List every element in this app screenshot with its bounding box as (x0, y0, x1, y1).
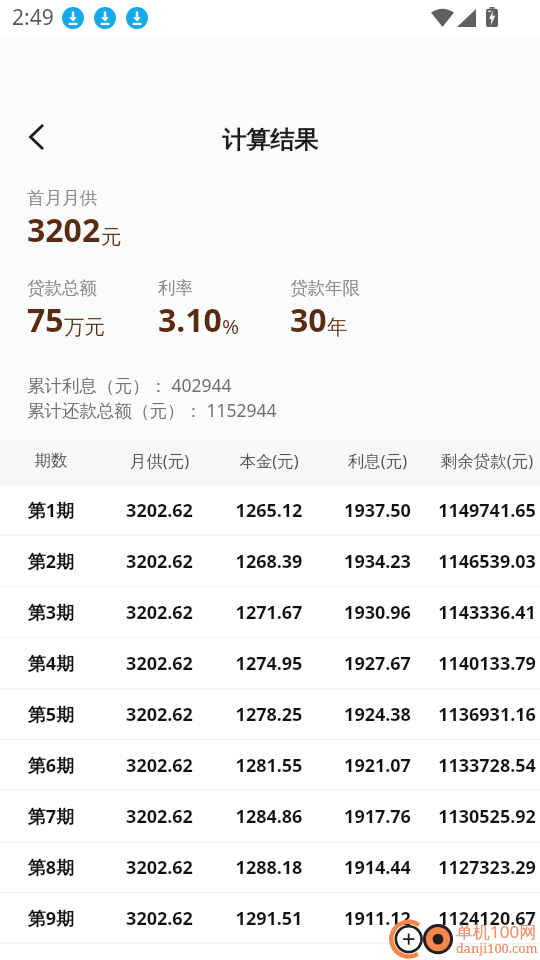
staticText: 第6期 (0, 753, 102, 778)
staticText: 1265.12 (217, 498, 321, 523)
staticText: danji100.com (456, 939, 538, 956)
staticText: % (222, 312, 240, 340)
staticText: 1130525.92 (434, 804, 540, 829)
staticText: 计算结果 (222, 125, 318, 155)
staticText: 1136931.16 (434, 702, 540, 727)
staticText: 3202.62 (102, 855, 217, 880)
staticText: 1917.76 (321, 804, 434, 829)
staticText: 1291.51 (217, 906, 321, 931)
staticText: 75 (27, 298, 64, 342)
staticText: 3202.62 (102, 498, 217, 523)
staticText: 1937.50 (321, 498, 434, 523)
staticText: 剩余贷款(元) (434, 449, 540, 472)
staticText: 期数 (0, 450, 102, 471)
staticText: 1284.86 (217, 804, 321, 829)
staticText: 3202.62 (102, 906, 217, 931)
staticText: 单机100网 (456, 920, 537, 943)
staticText: 1127323.29 (434, 855, 540, 880)
staticText: 3202.62 (102, 600, 217, 625)
staticText: 3202.62 (102, 549, 217, 574)
staticText: 第3期 (0, 600, 102, 625)
staticText: 30 (290, 298, 327, 342)
staticText: 3202.62 (102, 702, 217, 727)
staticText: 贷款总额 (27, 277, 97, 299)
staticText: 第2期 (0, 549, 102, 574)
staticText: 3202.62 (102, 804, 217, 829)
staticText: 3.10 (158, 298, 222, 342)
staticText: 1143336.41 (434, 600, 540, 625)
staticText: 首月月供 (27, 187, 97, 209)
button[interactable]: 第9期 (0, 893, 540, 943)
staticText: 1911.12 (321, 906, 434, 931)
button[interactable]: 第7期 (0, 791, 540, 841)
staticText: 1133728.54 (434, 753, 540, 778)
staticText: 3202 (27, 208, 101, 252)
staticText: 2:49 (12, 3, 54, 32)
staticText: 利息(元) (321, 449, 434, 472)
button[interactable]: 第5期 (0, 689, 540, 739)
button[interactable]: 第6期 (0, 740, 540, 790)
staticText: 1149741.65 (434, 498, 540, 523)
staticText: 利率 (158, 277, 193, 299)
staticText: 1124120.67 (434, 906, 540, 931)
staticText: 第5期 (0, 702, 102, 727)
staticText: 1278.25 (217, 702, 321, 727)
staticText: 1281.55 (217, 753, 321, 778)
button[interactable]: 第4期 (0, 638, 540, 688)
staticText: 累计还款总额（元）： 1152944 (27, 398, 277, 422)
staticText: 1921.07 (321, 753, 434, 778)
button[interactable]: 第3期 (0, 587, 540, 637)
staticText: 1927.67 (321, 651, 434, 676)
staticText: 1268.39 (217, 549, 321, 574)
staticText: 月供(元) (102, 449, 217, 472)
staticText: 累计利息（元）： 402944 (27, 373, 232, 397)
staticText: 1274.95 (217, 651, 321, 676)
button[interactable]: Back (8, 109, 64, 165)
staticText: 第4期 (0, 651, 102, 676)
staticText: 1934.23 (321, 549, 434, 574)
staticText: 3202.62 (102, 753, 217, 778)
staticText: 1914.44 (321, 855, 434, 880)
staticText: 第8期 (0, 855, 102, 880)
staticText: 年 (327, 314, 348, 340)
staticText: 第9期 (0, 906, 102, 931)
button[interactable]: 第8期 (0, 842, 540, 892)
staticText: 3202.62 (102, 651, 217, 676)
staticText: 万元 (64, 314, 105, 340)
staticText: 元 (101, 224, 122, 250)
staticText: 1288.18 (217, 855, 321, 880)
button[interactable]: 第2期 (0, 536, 540, 586)
staticText: 第7期 (0, 804, 102, 829)
staticText: 1140133.79 (434, 651, 540, 676)
staticText: 1930.96 (321, 600, 434, 625)
staticText: 1271.67 (217, 600, 321, 625)
staticText: 贷款年限 (290, 277, 360, 299)
staticText: 本金(元) (217, 449, 321, 472)
staticText: 1146539.03 (434, 549, 540, 574)
staticText: 1924.38 (321, 702, 434, 727)
staticText: 第1期 (0, 498, 102, 523)
button[interactable]: 第1期 (0, 485, 540, 535)
